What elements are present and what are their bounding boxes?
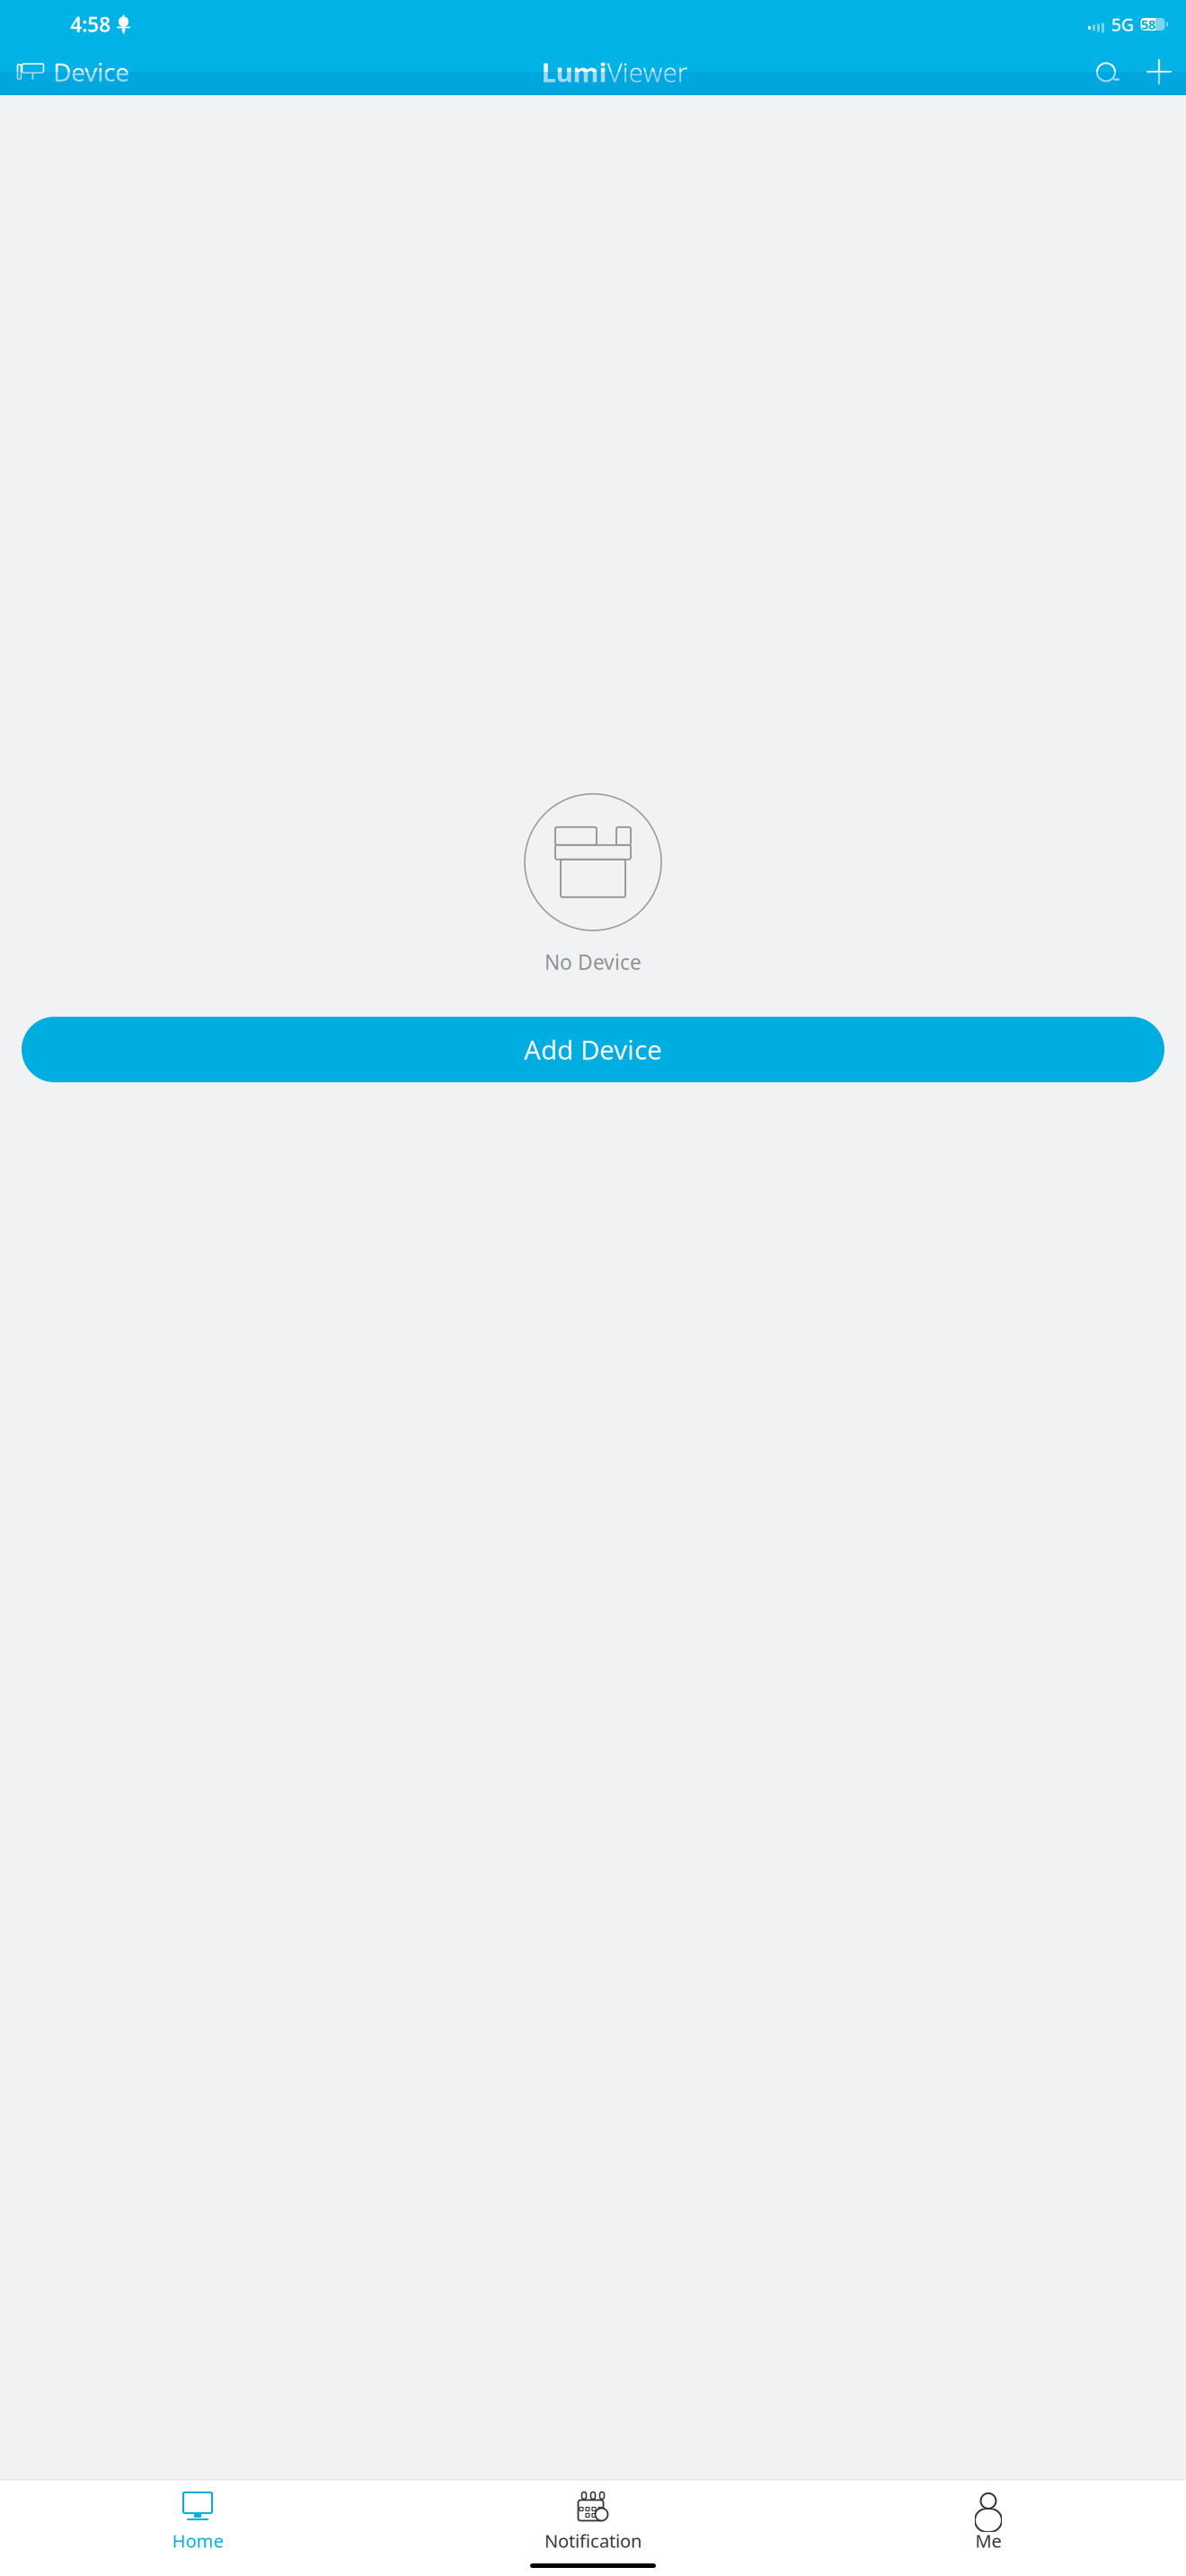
button[interactable]: Add Device [22, 1017, 1164, 1082]
button[interactable]: Add device [1141, 54, 1177, 90]
staticText: Me [975, 2529, 1001, 2553]
button[interactable]: Me [791, 2484, 1186, 2556]
button[interactable]: Notification [395, 2484, 791, 2556]
staticText: No Device [544, 948, 642, 975]
staticText: Notification [544, 2529, 642, 2553]
staticText: Add Device [524, 1032, 662, 1067]
staticText: 5G [1111, 12, 1134, 36]
staticText: Lumi [541, 54, 607, 89]
button[interactable]: Home [0, 2484, 395, 2556]
button[interactable]: Search [1091, 54, 1127, 90]
staticText: Home [172, 2529, 223, 2553]
staticText: 58 [1141, 16, 1155, 33]
button[interactable]: Device [7, 50, 138, 94]
staticText: 4:58 [70, 11, 111, 38]
staticText: Viewer [607, 54, 688, 89]
staticText: Device [53, 55, 129, 89]
